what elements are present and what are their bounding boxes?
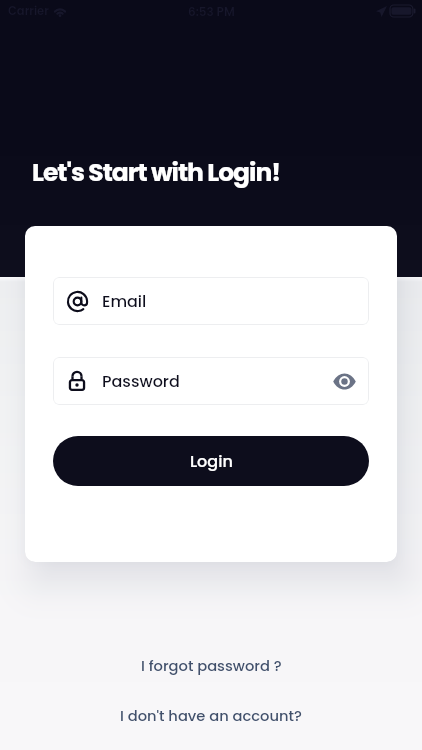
button[interactable]: I don't have an account? <box>110 701 312 732</box>
button[interactable]: Password <box>53 357 369 405</box>
button[interactable]: Login <box>53 436 369 486</box>
button[interactable]: Email <box>53 277 369 325</box>
staticText: Let's Start with Login! <box>32 155 281 190</box>
staticText: Login <box>190 450 233 472</box>
staticText: Carrier <box>8 3 49 19</box>
staticText: Password <box>102 370 180 392</box>
staticText: 6:53 PM <box>188 3 235 20</box>
button[interactable]: I forgot password ? <box>131 651 292 682</box>
staticText: I don't have an account? <box>120 706 302 727</box>
staticText: Email <box>102 290 147 312</box>
button[interactable]: Show password <box>331 368 357 394</box>
staticText: I forgot password ? <box>141 656 282 677</box>
